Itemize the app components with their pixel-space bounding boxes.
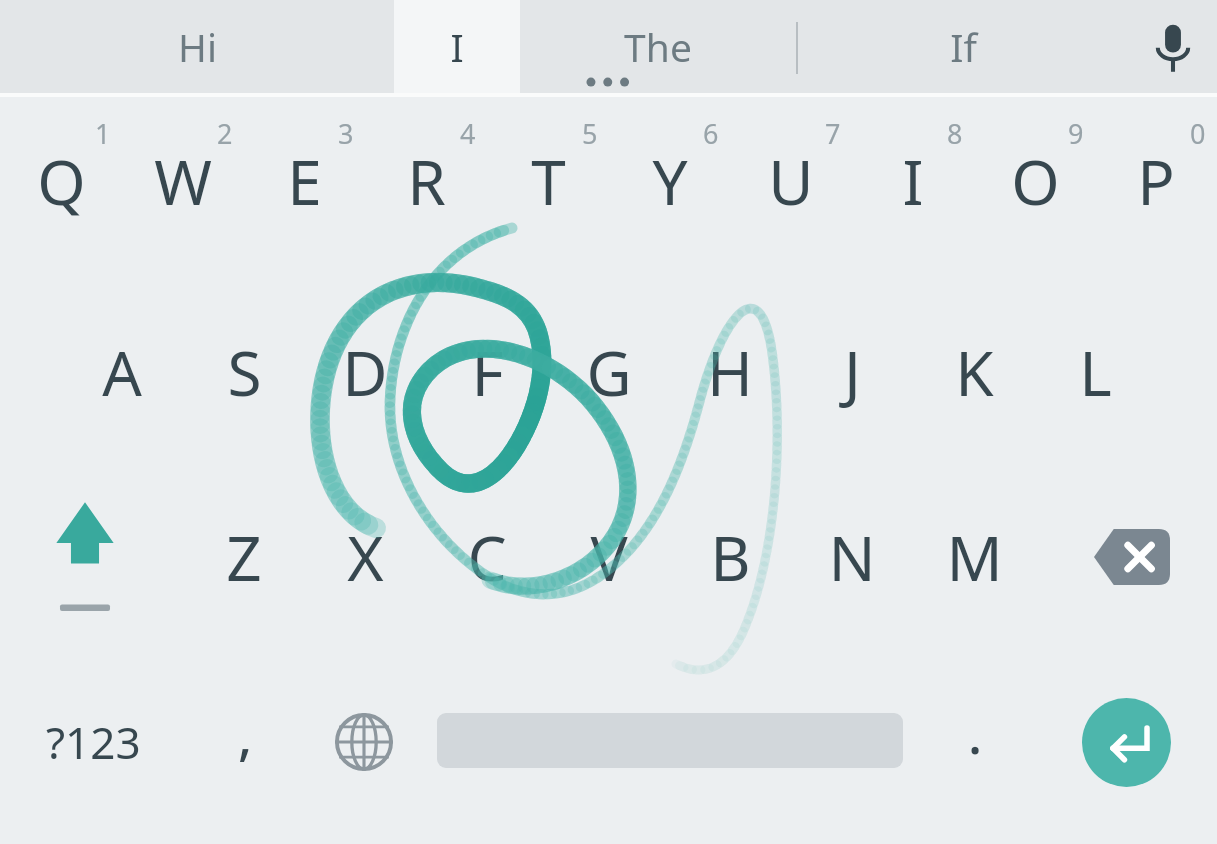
button[interactable]: The [520,0,796,93]
staticText: Z [226,515,262,599]
staticText: B [710,515,751,599]
staticText: N [828,515,876,599]
staticText: 7 [825,115,841,152]
staticText: I [450,20,464,73]
button[interactable]: Enter [1082,698,1171,787]
staticText: L [1079,330,1112,414]
button[interactable]: N [791,464,913,650]
button[interactable]: D [304,279,426,465]
staticText: Q [37,139,86,223]
staticText: K [955,330,994,414]
staticText: T [531,139,566,223]
button[interactable]: I [852,88,974,274]
staticText: R [407,139,446,223]
staticText: 4 [460,115,476,152]
button[interactable]: H [669,279,791,465]
button[interactable]: Switch language [305,682,423,802]
button[interactable]: T [487,88,609,274]
button[interactable]: . [920,682,1030,802]
staticText: C [467,515,507,599]
staticText: 6 [703,115,719,152]
button[interactable]: B [669,464,791,650]
staticText: J [844,330,861,414]
staticText: 1 [95,115,111,152]
staticText: The [624,20,692,73]
staticText: If [950,20,977,73]
staticText: Y [652,139,688,223]
button[interactable]: Hi [0,0,394,93]
staticText: O [1011,139,1060,223]
staticText: 2 [217,115,233,152]
staticText: M [946,515,1003,599]
button[interactable]: R [365,88,487,274]
button[interactable]: Y [609,88,731,274]
staticText: , [238,699,253,770]
button[interactable]: F [426,279,548,465]
staticText: P [1137,139,1175,223]
staticText: 9 [1068,115,1084,152]
button[interactable]: E [243,88,365,274]
staticText: 8 [947,115,963,152]
button[interactable]: A [61,279,183,465]
button[interactable]: Shift [24,464,146,650]
staticText: H [707,330,753,414]
staticText: X [347,515,384,599]
button[interactable]: Z [183,464,305,650]
staticText: G [586,330,632,414]
button[interactable]: G [548,279,670,465]
staticText: 3 [338,115,354,152]
button[interactable]: J [791,279,913,465]
staticText: S [227,330,262,414]
button[interactable]: V [548,464,670,650]
staticText: E [287,139,322,223]
staticText: ?123 [46,712,141,772]
button[interactable]: U [730,88,852,274]
button[interactable]: K [913,279,1035,465]
button[interactable]: Q [0,88,122,274]
staticText: A [102,330,142,414]
button[interactable]: P [1095,88,1217,274]
staticText: D [342,330,388,414]
staticText: W [154,139,212,223]
button[interactable]: If [798,0,1128,93]
staticText: F [471,330,504,414]
button[interactable]: L [1034,279,1156,465]
button[interactable]: S [183,279,305,465]
staticText: U [768,139,814,223]
button[interactable]: I [394,0,520,93]
button[interactable]: Voice input [1128,0,1217,96]
button[interactable]: Backspace [1071,464,1193,650]
staticText: I [902,139,924,223]
staticText: 0 [1190,115,1206,152]
button[interactable]: C [426,464,548,650]
staticText: 5 [582,115,598,152]
staticText: . [968,698,983,769]
button[interactable]: M [913,464,1035,650]
button[interactable]: W [122,88,244,274]
button[interactable]: O [974,88,1096,274]
button[interactable]: , [185,682,305,802]
button[interactable]: ?123 [18,682,168,802]
staticText: Hi [178,20,217,73]
button[interactable]: X [304,464,426,650]
staticText: V [590,515,628,599]
